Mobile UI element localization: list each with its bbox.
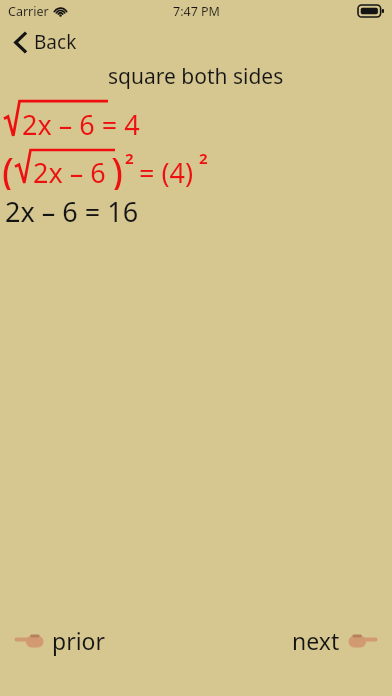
button[interactable]: Back (10, 26, 81, 58)
staticText: = (4) (139, 154, 194, 191)
staticText: square both sides (108, 62, 284, 91)
staticText: 7:47 PM (173, 3, 220, 20)
staticText: Back (34, 29, 77, 55)
staticText: ) (111, 144, 123, 190)
staticText: 2x – 6 (33, 154, 106, 191)
staticText: 2 (199, 148, 208, 168)
staticText: 2 (125, 148, 134, 168)
staticText: prior (52, 625, 105, 656)
staticText: Carrier (8, 3, 49, 20)
button[interactable]: next (288, 621, 382, 660)
staticText: next (292, 625, 340, 656)
staticText: ( (2, 144, 14, 190)
staticText: 2x – 6 = 16 (5, 193, 139, 230)
staticText: 2x – 6 = 4 (22, 106, 140, 143)
button[interactable]: prior (10, 621, 109, 660)
